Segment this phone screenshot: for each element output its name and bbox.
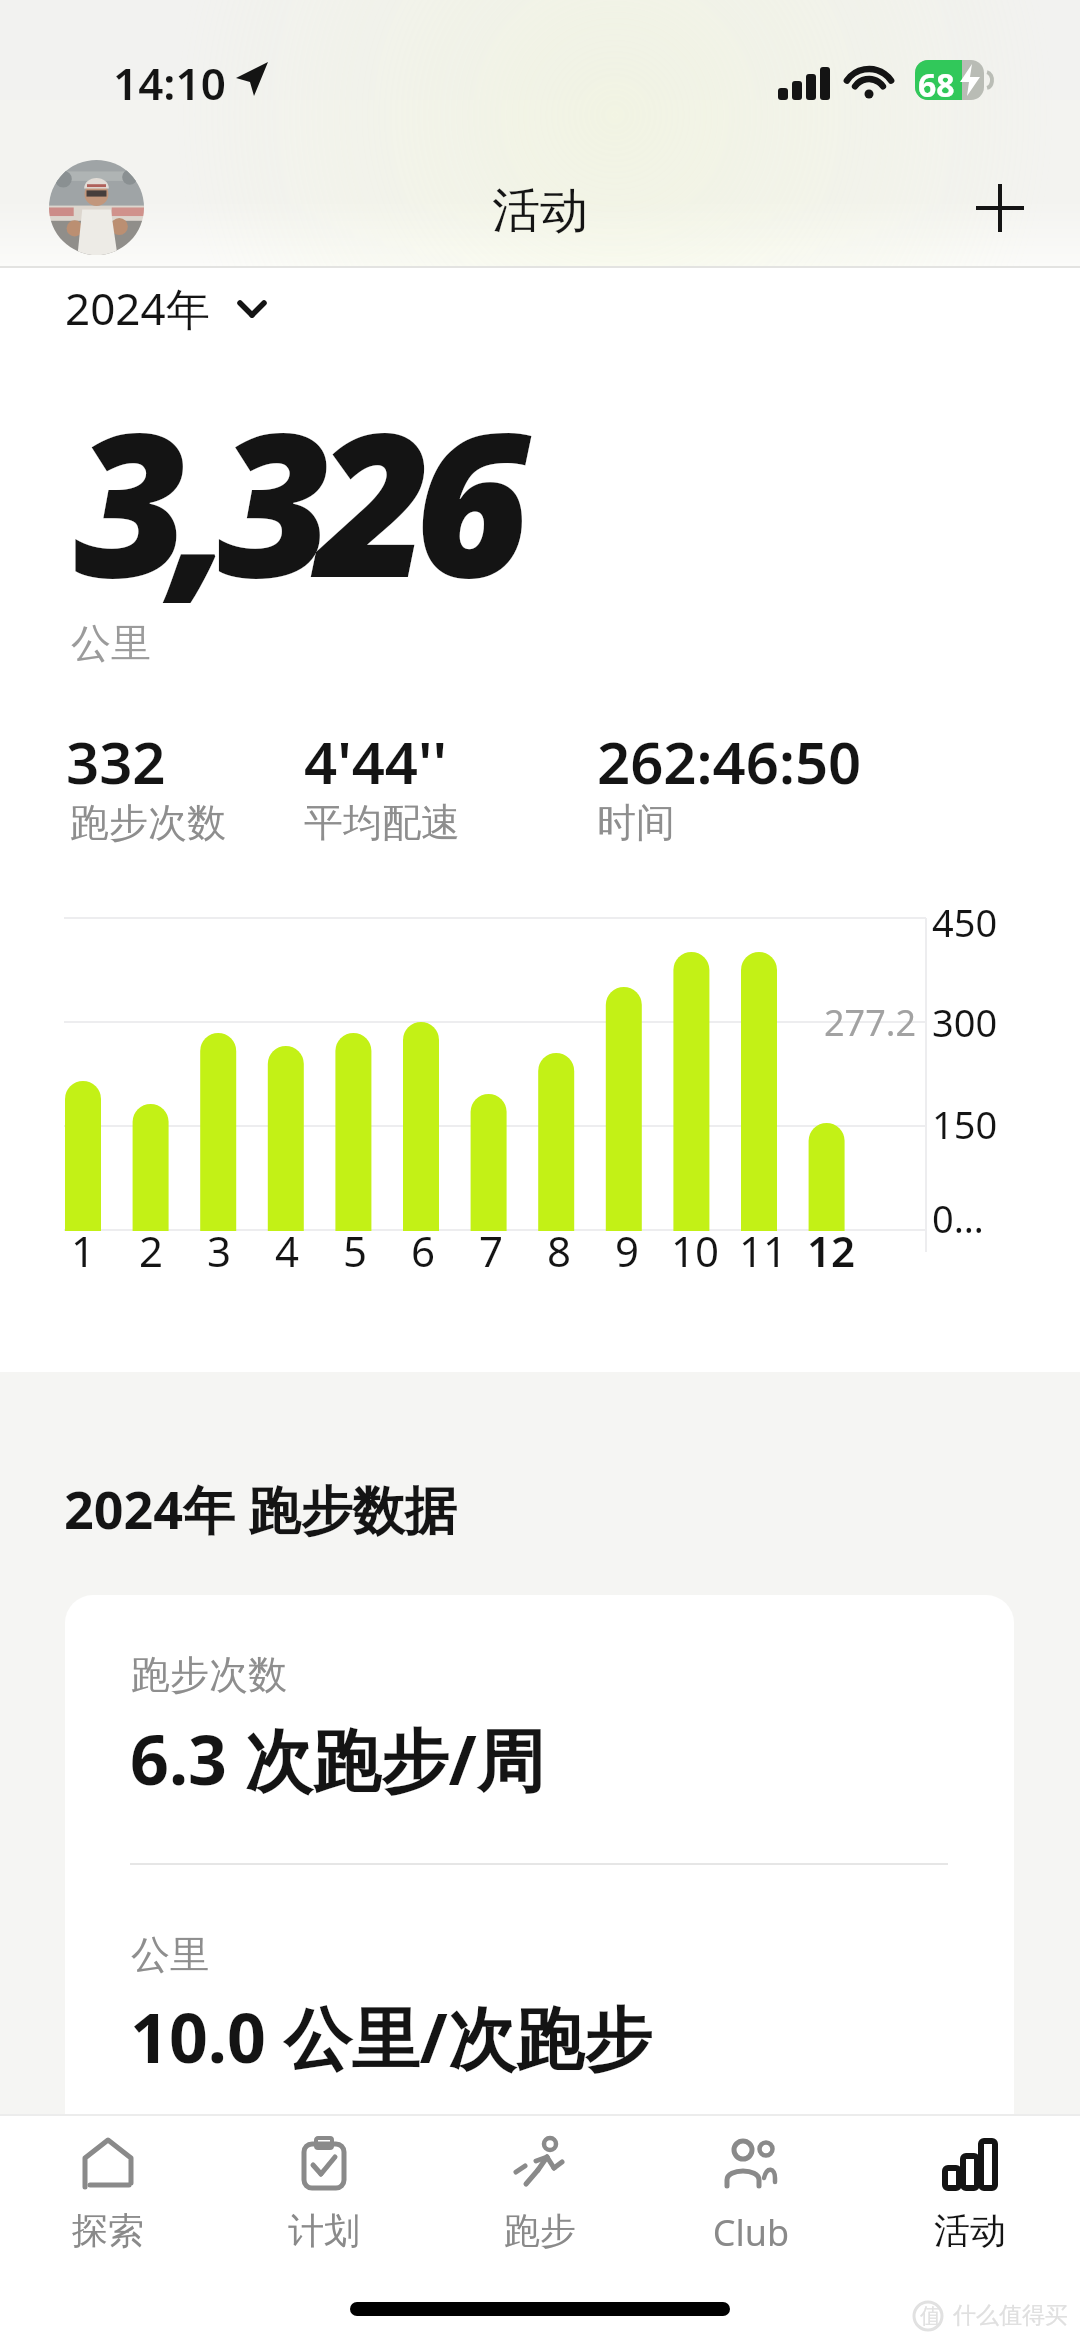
button[interactable] (49, 160, 144, 255)
staticText: 4 (257, 1222, 317, 1279)
staticText: 2024年 跑步数据 (64, 1473, 457, 1544)
staticText: 9 (597, 1222, 657, 1279)
staticText: 3 (189, 1222, 249, 1279)
staticText: 6 (393, 1222, 453, 1279)
staticText: 12 (801, 1222, 861, 1279)
staticText: 11 (733, 1222, 793, 1279)
staticText: 5 (325, 1222, 385, 1279)
staticText: 300 (932, 996, 998, 1048)
staticText: 1 (53, 1222, 113, 1279)
staticText: 8 (529, 1222, 589, 1279)
button[interactable] (65, 1595, 1014, 2180)
staticText: 10 (665, 1222, 725, 1279)
staticText: 跑步 (460, 2208, 620, 2253)
staticText: 公里 (131, 1930, 209, 1979)
staticText: 10.0 公里/次跑步 (130, 1990, 652, 2083)
staticText: 计划 (244, 2208, 404, 2253)
staticText: 2024年 (65, 278, 210, 338)
staticText: 值 (920, 2303, 941, 2329)
button[interactable]: 探索 (28, 2120, 188, 2260)
staticText: 时间 (597, 798, 675, 847)
staticText: 4'44'' (304, 722, 448, 801)
staticText: 2 (121, 1222, 181, 1279)
staticText: 277.2 (760, 998, 916, 1047)
button[interactable]: 2024年 (60, 278, 290, 342)
button[interactable]: 计划 (244, 2120, 404, 2260)
button[interactable]: Club (671, 2120, 831, 2260)
staticText: 活动 (890, 2208, 1050, 2253)
staticText: 活动 (492, 181, 588, 241)
staticText: Club (671, 2208, 831, 2257)
staticText: 跑步次数 (131, 1650, 287, 1699)
staticText: 150 (932, 1098, 998, 1150)
staticText: 0… (932, 1192, 984, 1244)
staticText: 什么值得买 (953, 2301, 1068, 2330)
staticText: 探索 (28, 2208, 188, 2253)
button[interactable]: 跑步 (460, 2120, 620, 2260)
button[interactable] (960, 168, 1040, 248)
staticText: 平均配速 (304, 798, 460, 847)
staticText: 7 (461, 1222, 521, 1279)
staticText: 262:46:50 (597, 722, 862, 801)
staticText: 68 (918, 63, 955, 107)
staticText: 跑步次数 (70, 798, 226, 847)
staticText: 3,326 (74, 365, 514, 635)
button[interactable]: 活动 (890, 2120, 1050, 2260)
staticText: 332 (66, 722, 166, 801)
staticText: 450 (932, 896, 998, 948)
staticText: 公里 (71, 618, 151, 668)
staticText: 6.3 次跑步/周 (130, 1712, 545, 1805)
staticText: 14:10 (113, 53, 226, 113)
